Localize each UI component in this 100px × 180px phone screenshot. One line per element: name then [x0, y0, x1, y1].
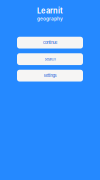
button[interactable]: settings [17, 70, 83, 81]
staticText: Learnit [37, 6, 63, 15]
staticText: search [44, 57, 55, 62]
staticText: settings [43, 73, 56, 78]
button[interactable]: search [17, 53, 83, 65]
staticText: continue [43, 40, 57, 45]
staticText: geography [37, 16, 63, 21]
button[interactable]: continue [17, 37, 83, 48]
